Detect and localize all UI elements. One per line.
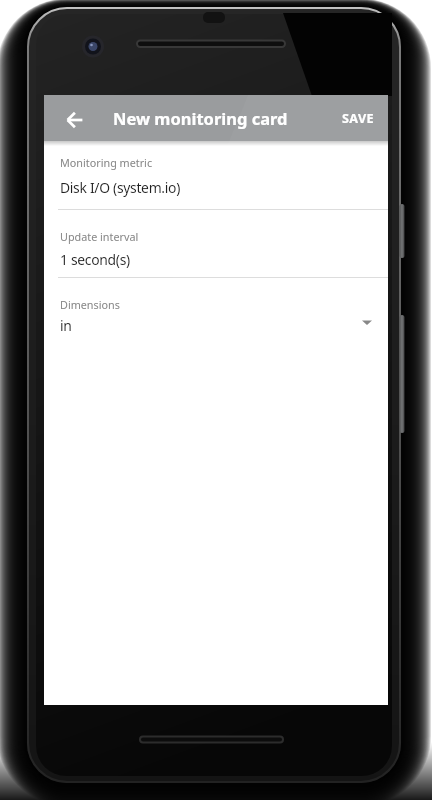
staticText: Dimensions — [60, 297, 120, 312]
staticText: Monitoring metric — [60, 155, 153, 170]
staticText: SAVE — [342, 110, 374, 127]
staticText: in — [60, 316, 72, 335]
button[interactable]: in — [44, 310, 388, 340]
staticText: Update interval — [60, 229, 139, 244]
staticText: 1 second(s) — [60, 250, 130, 269]
button[interactable] — [44, 209, 388, 279]
button[interactable] — [44, 141, 388, 209]
button[interactable]: SAVE — [342, 110, 374, 127]
staticText: New monitoring card — [113, 107, 288, 129]
staticText: Disk I/O (system.io) — [60, 178, 181, 197]
button[interactable] — [52, 97, 98, 143]
